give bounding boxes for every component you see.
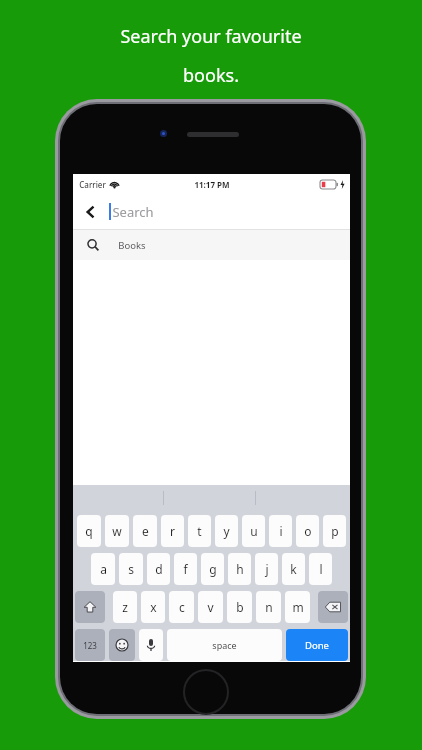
staticText: b: [236, 599, 244, 615]
button[interactable]: space: [167, 629, 282, 661]
button[interactable]: u: [242, 515, 265, 547]
button[interactable]: e: [133, 515, 157, 547]
staticText: u: [250, 523, 258, 539]
staticText: Search: [112, 203, 154, 221]
staticText: x: [150, 599, 157, 615]
button[interactable]: o: [296, 515, 319, 547]
staticText: l: [319, 561, 323, 577]
button[interactable]: w: [105, 515, 129, 547]
button[interactable]: Emoji: [109, 629, 135, 661]
button[interactable]: Books: [73, 230, 350, 260]
button[interactable]: r: [161, 515, 184, 547]
staticText: i: [279, 523, 283, 539]
staticText: j: [265, 561, 269, 577]
staticText: m: [292, 599, 304, 615]
button[interactable]: Done: [286, 629, 348, 661]
staticText: z: [122, 599, 128, 615]
staticText: a: [100, 561, 107, 577]
staticText: 123: [83, 640, 97, 651]
button[interactable]: Search: [109, 194, 350, 229]
button[interactable]: q: [77, 515, 101, 547]
staticText: g: [209, 561, 217, 577]
button[interactable]: i: [269, 515, 292, 547]
staticText: f: [183, 561, 188, 577]
staticText: Books: [118, 239, 146, 252]
button[interactable]: s: [119, 553, 143, 585]
staticText: y: [223, 523, 230, 539]
button[interactable]: Dictation: [139, 629, 163, 661]
staticText: Done: [305, 639, 329, 652]
staticText: c: [179, 599, 185, 615]
button[interactable]: h: [228, 553, 251, 585]
button[interactable]: c: [169, 591, 194, 623]
staticText: s: [128, 561, 134, 577]
button[interactable]: n: [256, 591, 281, 623]
button[interactable]: m: [285, 591, 310, 623]
button[interactable]: d: [147, 553, 170, 585]
staticText: books.: [183, 63, 239, 88]
staticText: n: [265, 599, 273, 615]
staticText: k: [290, 561, 297, 577]
button[interactable]: f: [174, 553, 197, 585]
button[interactable]: Backspace: [318, 591, 348, 623]
button[interactable]: l: [309, 553, 332, 585]
staticText: space: [212, 639, 237, 651]
button[interactable]: k: [282, 553, 305, 585]
staticText: h: [236, 561, 244, 577]
staticText: p: [331, 523, 339, 539]
button[interactable]: t: [188, 515, 211, 547]
button[interactable]: p: [323, 515, 346, 547]
button[interactable]: v: [198, 591, 223, 623]
button[interactable]: y: [215, 515, 238, 547]
staticText: 11:17 PM: [194, 179, 230, 190]
staticText: Carrier: [79, 179, 106, 190]
button[interactable]: j: [255, 553, 278, 585]
staticText: q: [85, 523, 93, 539]
button[interactable]: Back: [73, 194, 109, 229]
staticText: t: [197, 523, 202, 539]
staticText: d: [155, 561, 163, 577]
staticText: o: [304, 523, 312, 539]
button[interactable]: Shift: [75, 591, 105, 623]
staticText: w: [112, 523, 122, 539]
button[interactable]: 123: [75, 629, 105, 661]
button[interactable]: a: [91, 553, 115, 585]
staticText: r: [170, 523, 175, 539]
staticText: Search your favourite: [120, 24, 302, 49]
button[interactable]: z: [113, 591, 137, 623]
staticText: v: [207, 599, 214, 615]
button[interactable]: x: [141, 591, 165, 623]
button[interactable]: b: [227, 591, 252, 623]
staticText: e: [142, 523, 149, 539]
button[interactable]: g: [201, 553, 224, 585]
